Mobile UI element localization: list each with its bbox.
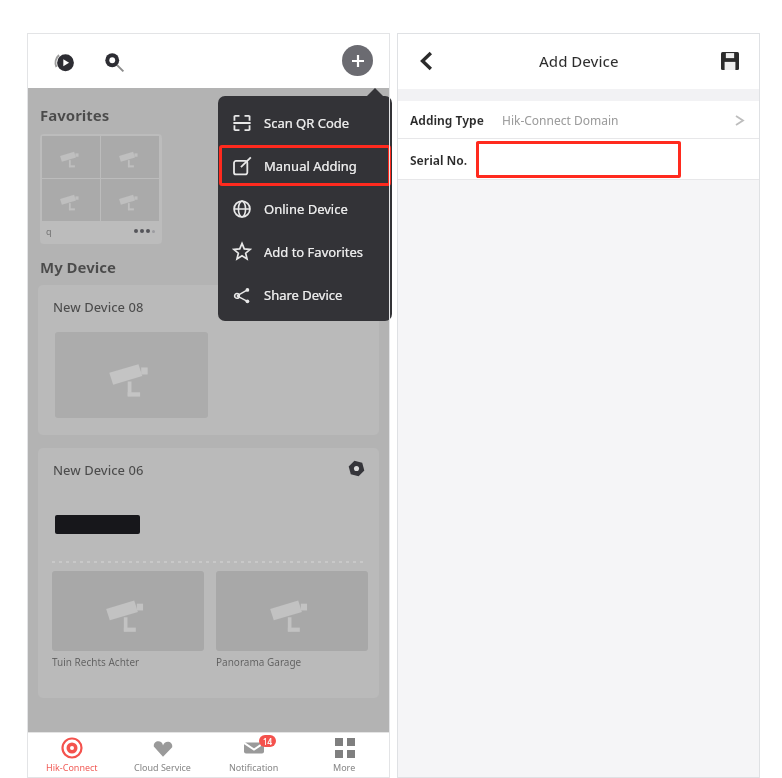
button[interactable]: Scan QR Code: [218, 101, 392, 144]
staticText: Serial No.: [410, 152, 468, 168]
button[interactable]: Live View: [49, 45, 81, 77]
button[interactable]: [476, 141, 681, 178]
staticText: New Device 08: [53, 298, 144, 316]
button[interactable]: Add to Favorites: [218, 230, 392, 273]
button[interactable]: Adding Type: [397, 101, 760, 139]
staticText: Share Device: [264, 286, 343, 304]
staticText: Manual Adding: [264, 157, 357, 175]
staticText: My Device: [40, 257, 116, 277]
staticText: More: [333, 761, 356, 773]
staticText: Cloud Service: [134, 761, 191, 773]
button[interactable]: Share Device: [218, 273, 392, 316]
button[interactable]: Device settings: [348, 460, 365, 477]
staticText: Tuin Rechts Achter: [52, 655, 140, 669]
staticText: Hik-Connect: [46, 761, 98, 773]
button[interactable]: [216, 571, 368, 651]
button[interactable]: Hik-Connect: [27, 732, 117, 778]
staticText: Panorama Garage: [216, 655, 302, 669]
staticText: Adding Type: [410, 112, 484, 128]
button[interactable]: Add: [342, 45, 373, 76]
staticText: Notification: [229, 761, 279, 773]
staticText: Online Device: [264, 200, 348, 218]
button[interactable]: Cloud Service: [117, 732, 208, 778]
staticText: Scan QR Code: [264, 114, 350, 132]
button[interactable]: More: [299, 732, 390, 778]
button[interactable]: Search: [97, 45, 129, 77]
button[interactable]: q: [40, 134, 162, 244]
staticText: q: [46, 225, 52, 237]
button[interactable]: Manual Adding: [218, 144, 392, 187]
button[interactable]: New Device 08: [38, 285, 379, 435]
button[interactable]: Online Device: [218, 187, 392, 230]
staticText: 14: [263, 736, 273, 747]
staticText: Hik-Connect Domain: [502, 112, 619, 128]
staticText: Favorites: [40, 105, 110, 125]
button[interactable]: New Device 06: [38, 448, 379, 698]
button[interactable]: 14: [208, 732, 299, 778]
button[interactable]: Save: [716, 47, 744, 75]
button[interactable]: Back: [411, 45, 443, 77]
staticText: New Device 06: [53, 461, 144, 479]
staticText: Add Device: [539, 51, 619, 71]
staticText: Add to Favorites: [264, 243, 364, 261]
button[interactable]: [52, 571, 204, 651]
